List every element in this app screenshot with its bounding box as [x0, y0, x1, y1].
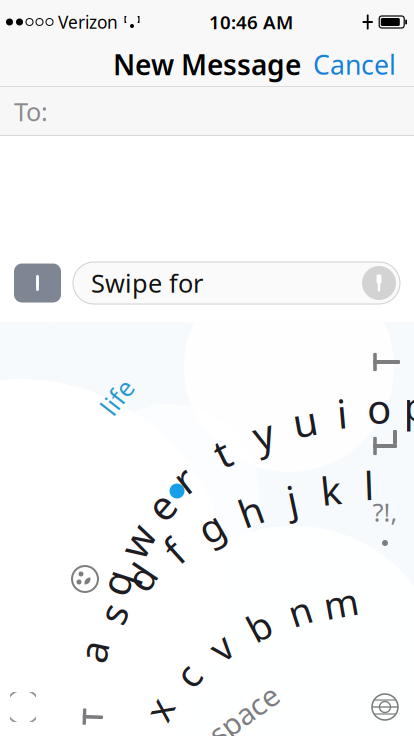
button[interactable]: p — [397, 387, 414, 425]
button[interactable]: Expand — [14, 263, 61, 302]
staticText: f — [167, 525, 180, 577]
button[interactable]: m — [322, 584, 360, 622]
staticText: life — [98, 380, 135, 414]
button[interactable]: t — [203, 434, 241, 472]
button[interactable]: k — [312, 471, 350, 509]
staticText: p — [403, 379, 414, 432]
staticText: a — [82, 625, 104, 677]
button[interactable]: Period — [368, 530, 402, 556]
staticText: v — [211, 622, 230, 672]
staticText: To: — [14, 95, 48, 128]
button[interactable]: e — [142, 487, 180, 525]
button[interactable]: o — [360, 389, 398, 427]
staticText: j — [287, 473, 297, 525]
staticText: l — [364, 459, 374, 511]
button[interactable]: f — [155, 532, 193, 570]
staticText: y — [253, 407, 273, 460]
button[interactable]: h — [232, 492, 270, 530]
staticText: Cancel — [313, 47, 396, 82]
button[interactable]: x — [140, 690, 178, 728]
staticText: t — [215, 426, 229, 479]
button[interactable]: u — [286, 402, 324, 440]
staticText: o — [367, 381, 391, 434]
button[interactable]: q — [97, 563, 135, 601]
staticText: m — [323, 578, 358, 628]
staticText: n — [288, 586, 311, 636]
button[interactable]: Next keyboard — [370, 692, 414, 736]
staticText: e — [149, 479, 172, 532]
staticText: c — [179, 650, 197, 700]
button[interactable]: Backspace — [364, 345, 406, 379]
button[interactable]: s — [94, 594, 132, 632]
button[interactable]: Return — [364, 422, 406, 456]
staticText: New Message — [113, 46, 301, 83]
staticText: Verizon — [58, 10, 118, 33]
staticText: space — [204, 694, 283, 733]
staticText: b — [247, 601, 270, 651]
button[interactable]: l — [350, 466, 388, 504]
button[interactable]: g — [192, 508, 230, 546]
button[interactable]: n — [281, 592, 319, 630]
staticText: k — [320, 464, 341, 516]
staticText: s — [103, 587, 122, 639]
staticText: i — [337, 386, 347, 439]
staticText: x — [149, 684, 169, 734]
staticText: d — [129, 551, 153, 603]
button[interactable]: j — [273, 480, 311, 518]
button[interactable]: d — [122, 558, 160, 596]
button[interactable]: Shift — [76, 700, 110, 734]
button[interactable]: To: — [0, 87, 414, 136]
staticText: ?!, — [372, 495, 397, 529]
staticText: r — [175, 452, 192, 505]
button[interactable]: a — [74, 632, 112, 670]
button[interactable]: c — [169, 656, 207, 694]
staticText: w — [121, 514, 152, 567]
button[interactable]: y — [244, 415, 282, 453]
button[interactable]: Send — [362, 266, 400, 300]
staticText: Swipe for — [91, 266, 203, 300]
staticText: q — [103, 555, 128, 608]
button[interactable]: ?!, — [365, 498, 405, 526]
button[interactable]: r — [165, 460, 203, 498]
staticText: u — [292, 394, 317, 447]
button[interactable]: w — [118, 522, 156, 560]
staticText: 10:46 AM — [209, 10, 293, 34]
staticText: h — [239, 485, 263, 537]
button[interactable]: i — [323, 394, 361, 432]
button[interactable]: v — [202, 628, 240, 666]
button[interactable]: b — [240, 607, 278, 645]
button[interactable]: Keyboard layout — [0, 692, 36, 736]
button[interactable]: Emoji — [70, 564, 100, 594]
button[interactable]: Cancel — [301, 39, 408, 90]
staticText: g — [199, 501, 223, 553]
